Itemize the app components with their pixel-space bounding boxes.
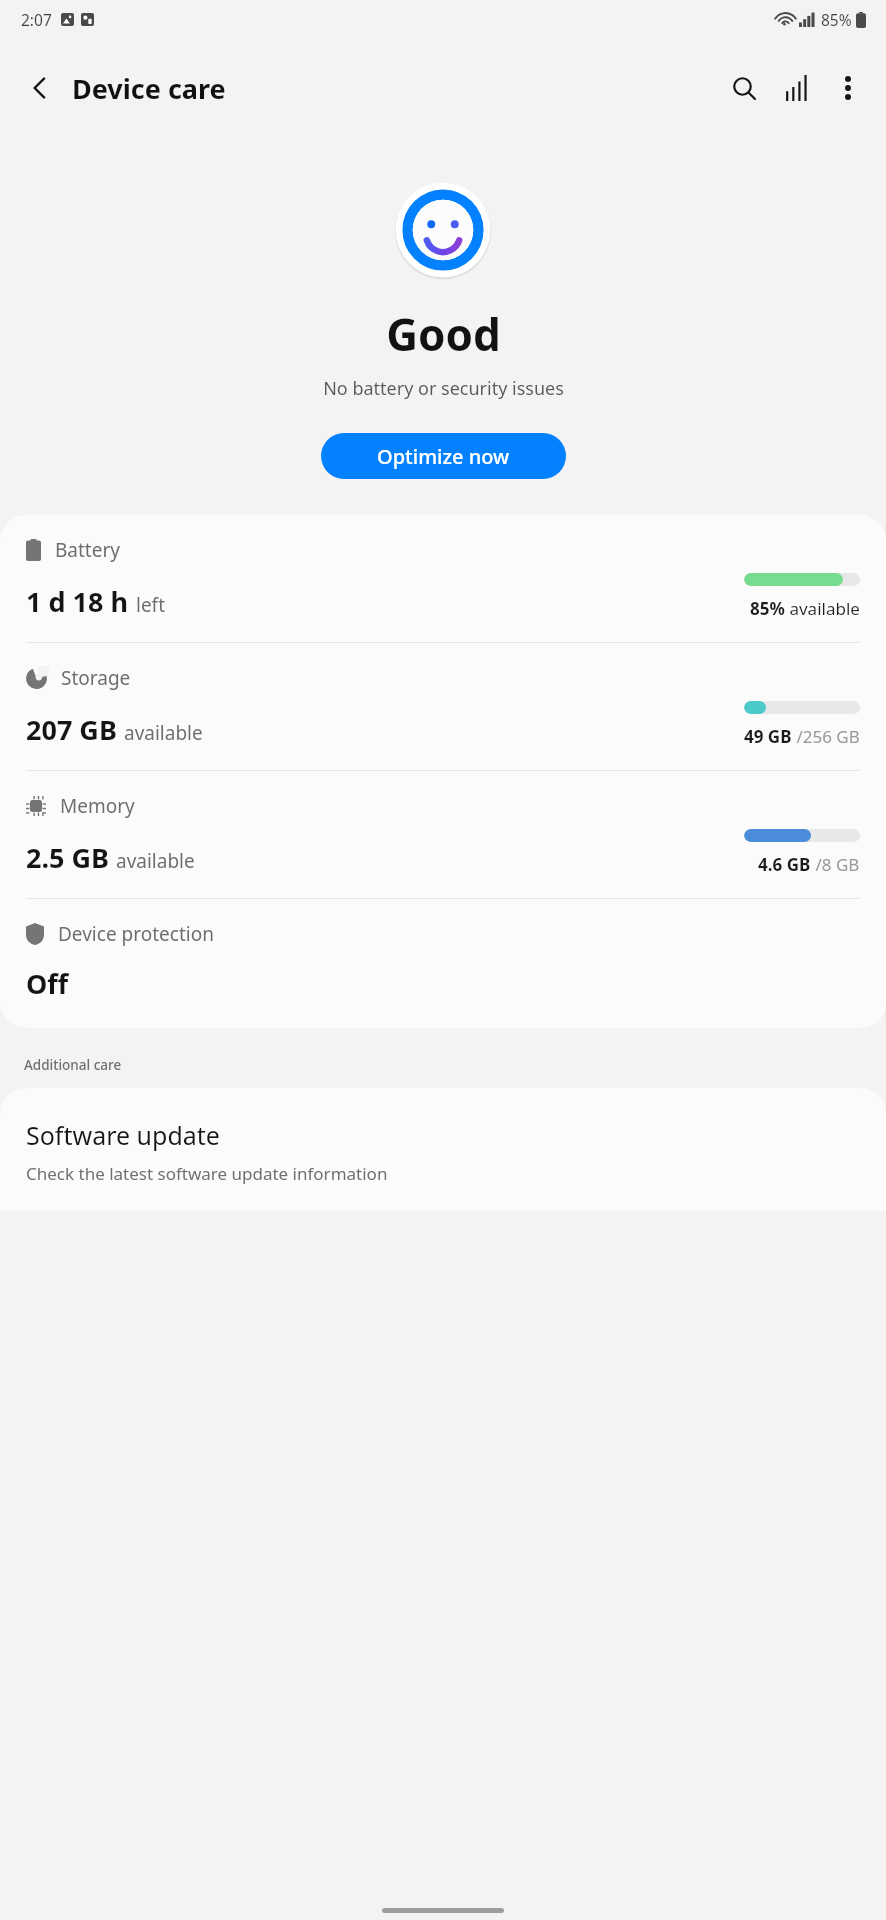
staticText: Battery bbox=[55, 537, 120, 563]
button[interactable]: Usage statistics bbox=[770, 62, 822, 114]
staticText: Check the latest software update informa… bbox=[26, 1162, 388, 1185]
button[interactable]: Battery bbox=[0, 515, 886, 642]
staticText: Good bbox=[386, 304, 501, 364]
button[interactable]: Back bbox=[14, 62, 66, 114]
staticText: Device care bbox=[72, 70, 226, 107]
staticText: Additional care bbox=[24, 1056, 122, 1074]
button[interactable]: Memory bbox=[0, 771, 886, 898]
staticText: /8 GB bbox=[811, 853, 860, 876]
button[interactable]: Optimize now bbox=[321, 433, 566, 479]
staticText: Off bbox=[26, 965, 69, 1002]
staticText: 207 GB bbox=[26, 711, 117, 748]
button[interactable]: Search bbox=[718, 62, 770, 114]
staticText: Storage bbox=[61, 665, 131, 691]
staticText: 2.5 GB bbox=[26, 839, 109, 876]
staticText: available bbox=[124, 720, 203, 746]
staticText: left bbox=[136, 592, 166, 618]
staticText: Optimize now bbox=[377, 443, 510, 470]
staticText: /256 GB bbox=[792, 725, 860, 748]
staticText: available bbox=[116, 848, 195, 874]
button[interactable]: Storage bbox=[0, 643, 886, 770]
button[interactable]: Device protection bbox=[0, 899, 886, 1028]
staticText: 1 d 18 h bbox=[26, 583, 129, 620]
staticText: Memory bbox=[60, 793, 135, 819]
staticText: Device protection bbox=[58, 921, 214, 947]
staticText: 85% bbox=[821, 9, 852, 30]
button[interactable]: More options bbox=[822, 62, 874, 114]
staticText: 85% bbox=[750, 597, 785, 620]
staticText: Software update bbox=[26, 1118, 220, 1152]
staticText: 49 GB bbox=[744, 725, 792, 748]
staticText: available bbox=[785, 597, 860, 620]
staticText: 4.6 GB bbox=[758, 853, 811, 876]
staticText: 2:07 bbox=[21, 9, 52, 30]
button[interactable]: Software update bbox=[0, 1088, 886, 1211]
staticText: No battery or security issues bbox=[323, 376, 564, 401]
